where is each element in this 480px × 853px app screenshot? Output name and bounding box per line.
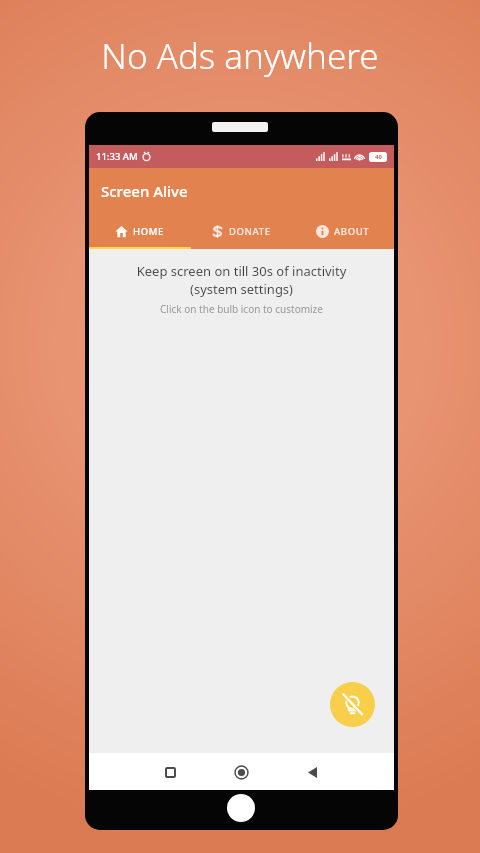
staticText: DONATE (229, 225, 271, 238)
staticText: Screen Alive (101, 181, 188, 201)
button[interactable]: Back (299, 759, 325, 785)
button[interactable]: Home (228, 759, 254, 785)
staticText: 40 (375, 153, 382, 161)
button[interactable]: Recent apps (157, 759, 183, 785)
staticText: HOME (133, 225, 164, 238)
staticText: No Ads anywhere (101, 32, 379, 80)
button[interactable]: DONATE (190, 214, 292, 249)
staticText: ABOUT (334, 225, 370, 238)
staticText: 11:33 AM (96, 150, 138, 163)
button[interactable]: HOME (89, 214, 190, 249)
button[interactable]: ABOUT (292, 214, 394, 249)
staticText: Keep screen on till 30s of inactivity (s… (89, 262, 394, 298)
button[interactable]: Toggle keep screen awake (330, 682, 375, 727)
staticText: Click on the bulb icon to customize (89, 302, 394, 316)
